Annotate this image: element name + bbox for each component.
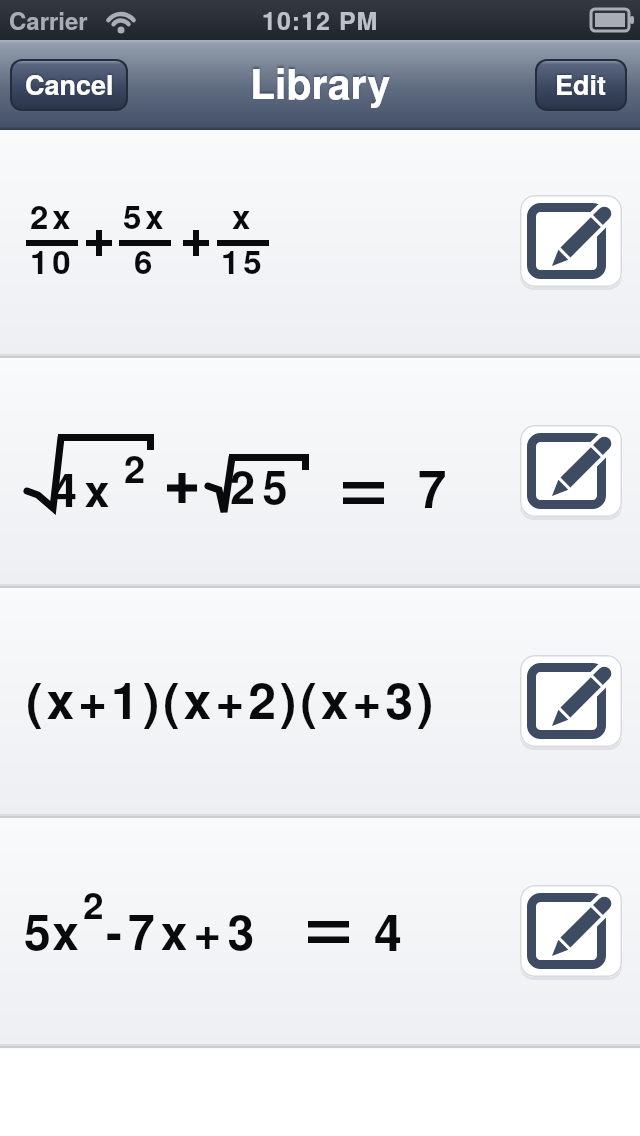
button[interactable] (520, 655, 622, 747)
staticText: Cancel (25, 65, 114, 104)
button[interactable]: Edit (537, 61, 625, 109)
staticText: x (232, 192, 255, 239)
staticText: 5x (24, 896, 81, 965)
staticText: (x+1)(x+2)(x+3) (26, 663, 438, 735)
button[interactable]: (x+1)(x+2)(x+3) (0, 590, 640, 814)
button[interactable]: 4x (0, 360, 640, 584)
staticText: Carrier (9, 3, 88, 37)
staticText: 10 (30, 237, 75, 284)
staticText: 2x (30, 192, 75, 239)
button[interactable]: 2x (0, 130, 640, 354)
staticText: 2 (83, 877, 104, 930)
staticText: Library (250, 53, 391, 112)
staticText: 6 (134, 237, 157, 284)
staticText: 2 (124, 440, 146, 494)
staticText: 7 (418, 451, 447, 524)
staticText: 10:12 PM (262, 2, 379, 38)
staticText: 4x (52, 456, 118, 520)
button[interactable]: Cancel (12, 61, 126, 109)
button[interactable] (520, 425, 622, 517)
button[interactable] (520, 885, 622, 977)
staticText: 4 (374, 895, 402, 967)
staticText: 5x (123, 192, 168, 239)
button[interactable]: 5x (0, 820, 640, 1044)
staticText: 25 (230, 453, 296, 517)
staticText: 15 (221, 237, 266, 284)
button[interactable] (520, 195, 622, 287)
staticText: Edit (555, 65, 607, 104)
staticText: -7x+3 (106, 896, 261, 965)
